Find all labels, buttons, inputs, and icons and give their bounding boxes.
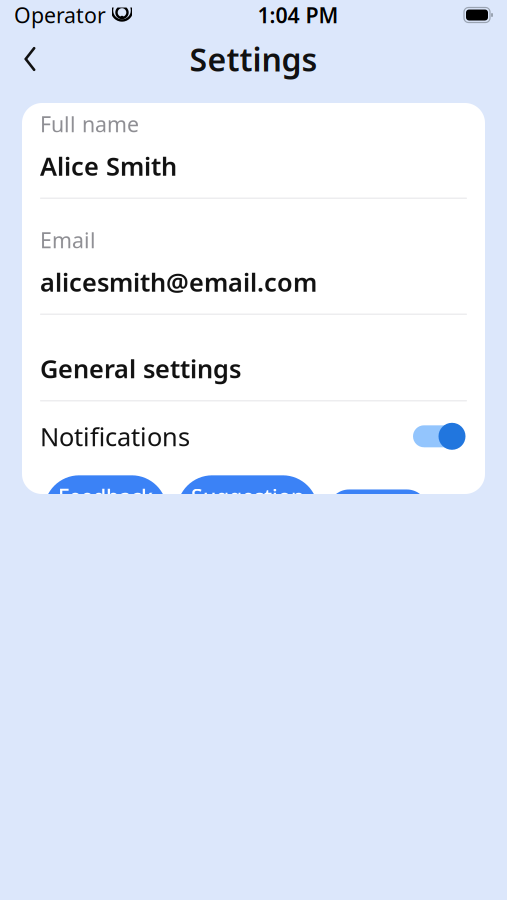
- staticText: alicesmith@email.com: [40, 265, 317, 299]
- button[interactable]: Gallery: [328, 489, 428, 532]
- button[interactable]: Notifications: [22, 401, 485, 471]
- button[interactable]: Back: [8, 37, 52, 81]
- staticText: Settings: [189, 38, 317, 80]
- button[interactable]: Feedback loop: [44, 475, 167, 546]
- button[interactable]: Change profile photo: [163, 0, 343, 78]
- staticText: Email: [40, 226, 96, 254]
- button[interactable]: Suggestion box: [177, 475, 318, 546]
- staticText: 1:04 PM: [257, 1, 338, 29]
- staticText: Notifications: [40, 419, 190, 453]
- staticText: Suggestion box: [191, 482, 304, 539]
- staticText: Feedback loop: [58, 482, 153, 539]
- staticText: A: [222, 0, 285, 53]
- staticText: General settings: [40, 352, 241, 385]
- staticText: Operator: [14, 1, 106, 29]
- staticText: Full name: [40, 110, 139, 138]
- staticText: Alice Smith: [40, 149, 177, 183]
